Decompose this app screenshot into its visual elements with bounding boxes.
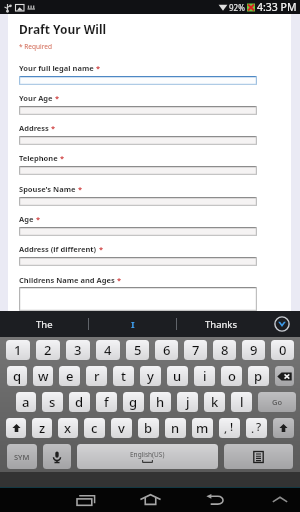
staticText: x <box>64 419 72 437</box>
button[interactable]: f <box>96 392 117 412</box>
button[interactable]: m <box>192 418 213 438</box>
staticText: * Required <box>19 42 52 51</box>
staticText: * <box>78 184 83 194</box>
staticText: u <box>173 367 182 385</box>
staticText: SYM <box>14 452 30 462</box>
button[interactable]: 0 <box>271 340 294 360</box>
button[interactable]: 7 <box>184 340 207 360</box>
button[interactable]: l <box>231 392 252 412</box>
button[interactable] <box>19 227 257 236</box>
staticText: j <box>186 393 190 411</box>
button[interactable]: Keyboard settings <box>224 444 293 469</box>
staticText: Telephone <box>19 153 58 163</box>
staticText: i <box>203 367 207 385</box>
button[interactable]: s <box>42 392 63 412</box>
button[interactable]: j <box>177 392 198 412</box>
button[interactable]: 1 <box>6 340 30 360</box>
button[interactable]: Back <box>193 487 237 512</box>
staticText: . <box>251 421 255 437</box>
button[interactable]: u <box>167 366 188 386</box>
button[interactable]: n <box>165 418 186 438</box>
staticText: ? <box>256 419 262 435</box>
button[interactable]: Go <box>258 392 296 412</box>
button[interactable]: The <box>0 311 88 337</box>
staticText: 1 <box>14 341 22 359</box>
button[interactable]: d <box>69 392 90 412</box>
button[interactable] <box>19 287 257 311</box>
button[interactable]: x <box>58 418 78 438</box>
button[interactable]: e <box>59 366 80 386</box>
button[interactable]: i <box>194 366 215 386</box>
staticText: 3 <box>74 341 82 359</box>
button[interactable]: z <box>32 418 52 438</box>
button[interactable]: ! <box>219 418 240 438</box>
button[interactable] <box>19 197 257 206</box>
button[interactable]: r <box>86 366 107 386</box>
button[interactable]: 6 <box>155 340 178 360</box>
staticText: p <box>254 367 263 385</box>
staticText: y <box>147 367 154 385</box>
button[interactable]: b <box>138 418 159 438</box>
button[interactable]: 8 <box>213 340 236 360</box>
staticText: e <box>66 367 74 385</box>
button[interactable]: ? <box>246 418 267 438</box>
staticText: k <box>211 393 219 411</box>
button[interactable]: 3 <box>66 340 90 360</box>
staticText: 7 <box>192 341 200 359</box>
button[interactable]: Shift <box>273 418 294 438</box>
button[interactable]: 4 <box>96 340 120 360</box>
staticText: , <box>224 421 228 437</box>
button[interactable]: 2 <box>36 340 60 360</box>
staticText: t <box>121 367 126 385</box>
staticText: Childrens Name and Ages <box>19 275 115 285</box>
staticText: 9 <box>250 341 258 359</box>
staticText: b <box>144 419 153 437</box>
button[interactable]: Backspace <box>275 366 294 386</box>
button[interactable]: w <box>33 366 53 386</box>
staticText: * <box>55 93 60 103</box>
button[interactable] <box>19 76 257 85</box>
button[interactable]: SYM <box>7 444 37 469</box>
staticText: The <box>36 318 53 331</box>
button[interactable]: Home <box>128 487 172 512</box>
staticText: 4 <box>104 341 112 359</box>
button[interactable]: Voice input <box>43 444 71 469</box>
button[interactable] <box>19 136 257 145</box>
button[interactable]: t <box>113 366 134 386</box>
staticText: f <box>104 393 109 411</box>
staticText: o <box>228 367 236 385</box>
button[interactable]: Expand suggestions <box>264 311 300 337</box>
button[interactable] <box>19 166 257 175</box>
button[interactable] <box>19 106 257 115</box>
button[interactable]: g <box>123 392 144 412</box>
staticText: Your Age <box>19 93 53 103</box>
staticText: d <box>75 393 84 411</box>
button[interactable]: v <box>111 418 132 438</box>
button[interactable]: h <box>150 392 171 412</box>
staticText: * <box>60 153 65 163</box>
button[interactable]: Shift <box>6 418 26 438</box>
button[interactable]: o <box>221 366 242 386</box>
button[interactable]: Hide keyboard <box>258 487 300 512</box>
staticText: q <box>13 367 22 385</box>
button[interactable]: Thanks <box>177 311 264 337</box>
button[interactable]: y <box>140 366 161 386</box>
button[interactable]: Recents <box>64 487 108 512</box>
staticText: * <box>96 63 101 73</box>
staticText: 92% <box>229 2 245 13</box>
button[interactable]: a <box>16 392 36 412</box>
button[interactable]: k <box>204 392 225 412</box>
button[interactable]: 9 <box>242 340 265 360</box>
button[interactable]: I <box>89 311 176 337</box>
staticText: m <box>196 419 209 437</box>
button[interactable]: c <box>84 418 105 438</box>
staticText: h <box>156 393 165 411</box>
button[interactable]: English(US) <box>77 444 218 469</box>
staticText: English(US) <box>130 450 165 459</box>
staticText: s <box>49 393 56 411</box>
button[interactable]: q <box>7 366 27 386</box>
button[interactable]: p <box>248 366 269 386</box>
button[interactable] <box>19 257 257 266</box>
staticText: a <box>22 393 30 411</box>
button[interactable]: 5 <box>126 340 149 360</box>
